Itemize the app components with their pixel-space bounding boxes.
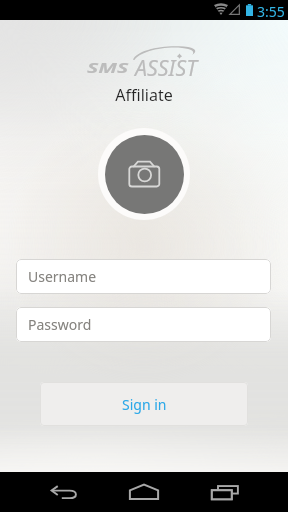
staticText: Username [28,267,97,286]
button[interactable]: Sign in [40,382,248,426]
button[interactable]: Back [32,472,96,512]
button[interactable]: Recent apps [193,472,257,512]
staticText: Sign in [122,395,167,414]
staticText: SMS [87,58,130,77]
staticText: Affiliate [0,84,288,106]
button[interactable]: Home [112,472,176,512]
button[interactable]: Password [16,307,271,342]
button[interactable]: Add profile photo [98,128,190,220]
staticText: Password [28,315,92,334]
staticText: 3:55 [257,2,285,21]
staticText: ASSIST [135,52,197,82]
button[interactable]: Username [16,259,271,294]
